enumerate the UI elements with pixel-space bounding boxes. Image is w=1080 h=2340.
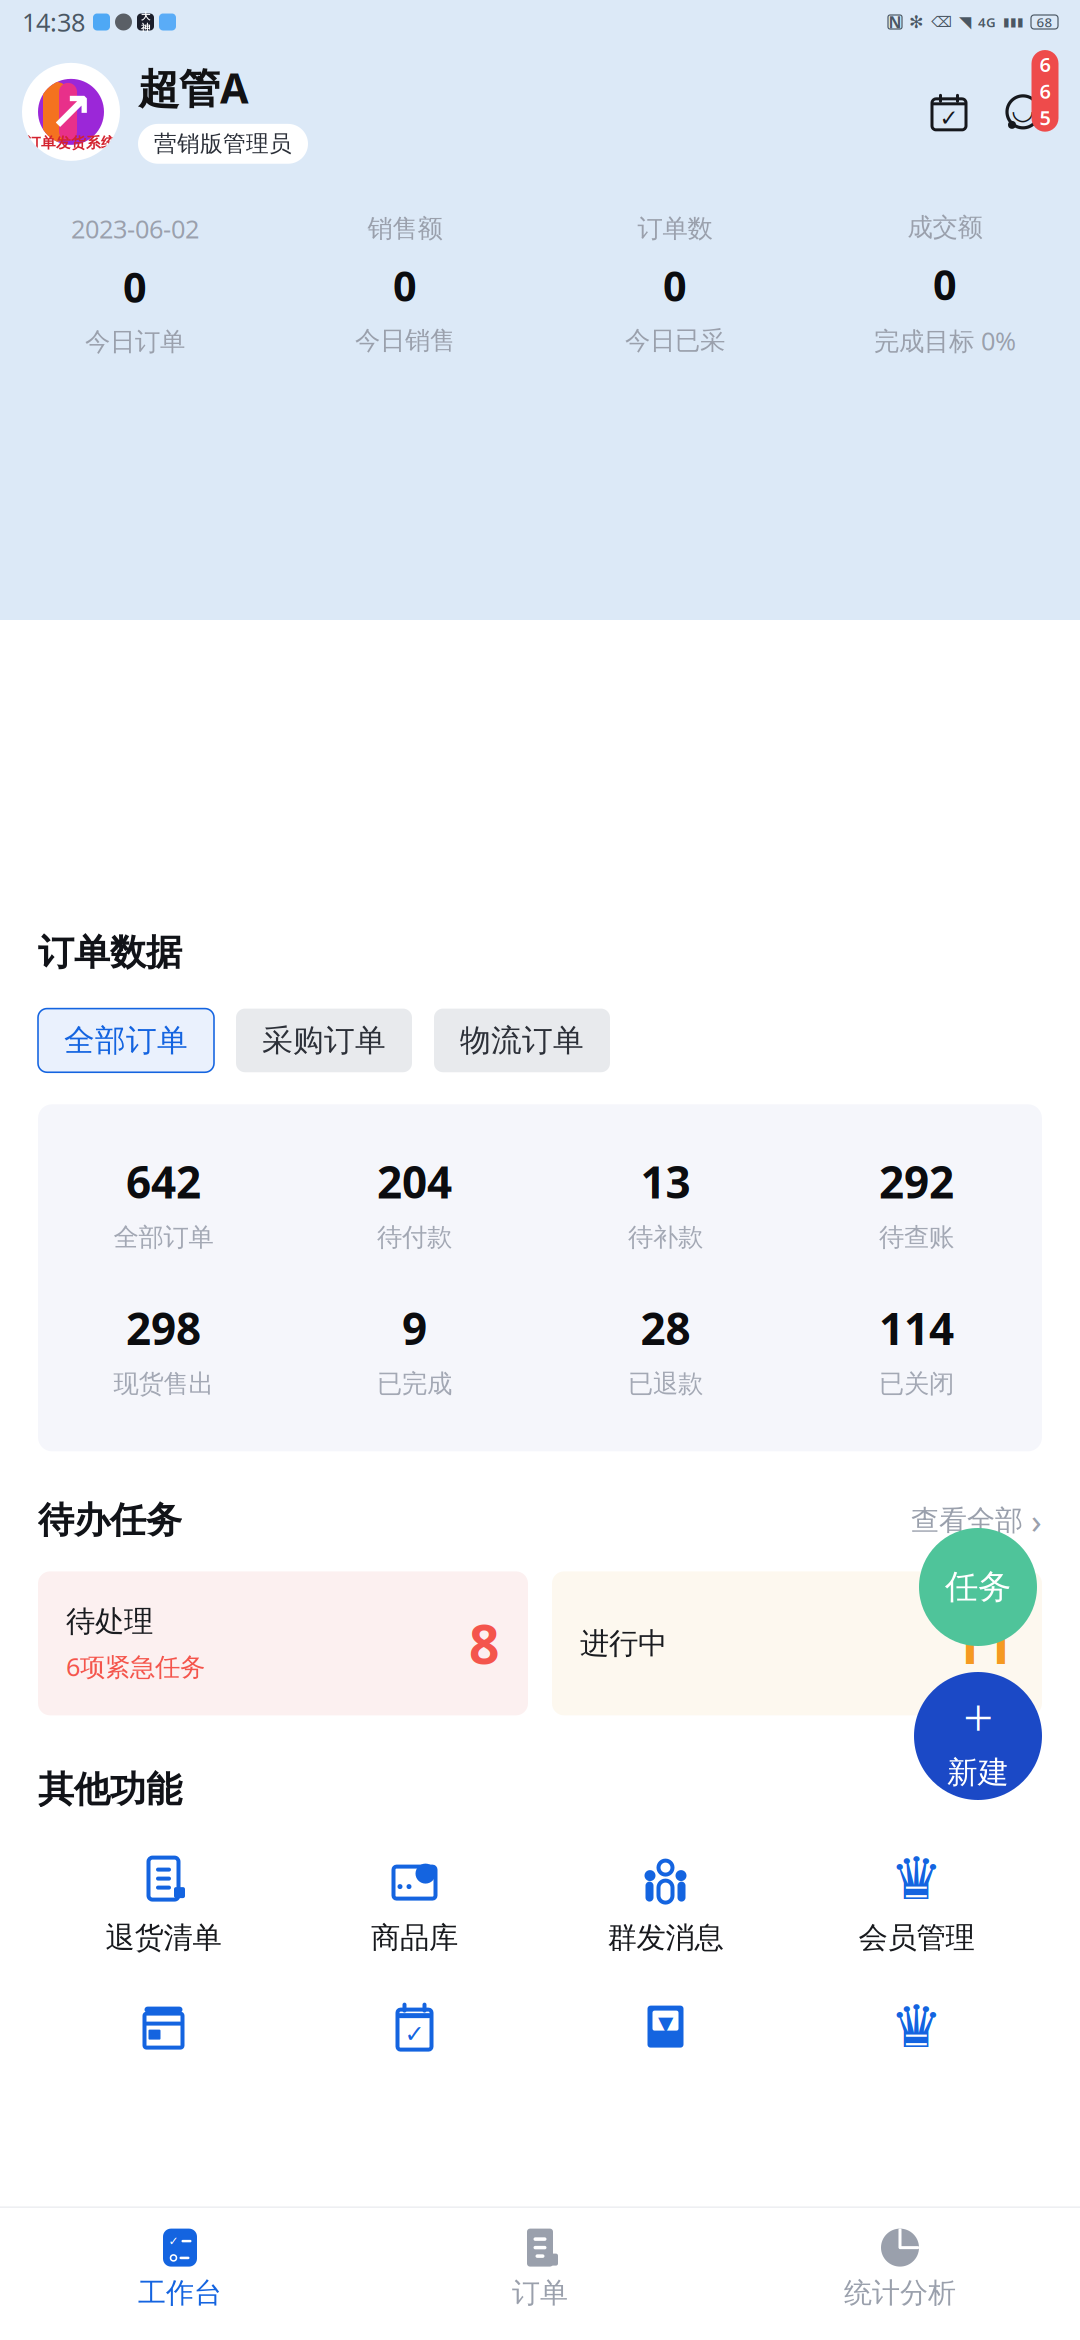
staticText: 114 bbox=[879, 1299, 954, 1357]
staticText: 现货售出 bbox=[113, 1368, 213, 1399]
staticText: 查看全部 bbox=[911, 1503, 1023, 1538]
staticText: 0 bbox=[933, 257, 957, 312]
staticText: 全部订单 bbox=[64, 1022, 188, 1059]
button[interactable]: ♛ bbox=[791, 1852, 1042, 1956]
staticText: 订单数据 bbox=[38, 930, 182, 975]
staticText: ⌫ bbox=[931, 14, 952, 30]
staticText: 群发消息 bbox=[607, 1920, 723, 1956]
staticText: 9 bbox=[402, 1299, 427, 1357]
staticText: 待处理 bbox=[66, 1603, 153, 1639]
staticText: › bbox=[1031, 1497, 1042, 1543]
button[interactable]: 28 bbox=[540, 1299, 791, 1399]
staticText: 会员管理 bbox=[858, 1920, 974, 1956]
staticText: 订单发货系统 bbox=[26, 134, 116, 152]
staticText: 204 bbox=[377, 1152, 452, 1211]
staticText: 全部订单 bbox=[113, 1222, 213, 1253]
staticText: 新建 bbox=[947, 1754, 1009, 1791]
staticText: 其他功能 bbox=[38, 1767, 182, 1812]
staticText: ✓ bbox=[404, 2020, 424, 2047]
staticText: 已完成 bbox=[377, 1368, 452, 1399]
button[interactable]: ▼ bbox=[540, 2000, 791, 2054]
staticText: ✓ bbox=[168, 2234, 178, 2248]
button[interactable]: + bbox=[914, 1672, 1042, 1800]
button[interactable]: ✓ bbox=[289, 2000, 540, 2054]
button[interactable]: 114 bbox=[791, 1299, 1042, 1399]
staticText: 商品库 bbox=[371, 1920, 458, 1956]
button[interactable]: 任务 bbox=[919, 1528, 1037, 1646]
button[interactable]: 204 bbox=[289, 1152, 540, 1253]
staticText: 物流订单 bbox=[460, 1022, 584, 1059]
staticText: 工作台 bbox=[138, 2276, 222, 2310]
staticText: 成交额 bbox=[907, 212, 982, 243]
staticText: 订单数 bbox=[637, 213, 712, 244]
staticText: 待付款 bbox=[377, 1222, 452, 1253]
button[interactable]: 9 bbox=[289, 1299, 540, 1399]
staticText: 完成目标 0% bbox=[874, 324, 1016, 357]
button[interactable]: 营销版管理员 bbox=[138, 124, 308, 164]
staticText: 今日已采 bbox=[625, 325, 725, 356]
button[interactable]: ✓ bbox=[0, 2218, 360, 2318]
staticText: 68 bbox=[1036, 13, 1052, 31]
staticText: 292 bbox=[879, 1152, 954, 1211]
staticText: 0 bbox=[123, 259, 147, 314]
button[interactable]: 查看全部 bbox=[911, 1497, 1042, 1543]
staticText: 待办任务 bbox=[38, 1498, 182, 1542]
button[interactable]: 群发消息 bbox=[540, 1852, 791, 1956]
staticText: 642 bbox=[126, 1152, 201, 1211]
staticText: 28 bbox=[640, 1299, 690, 1357]
staticText: 订单 bbox=[512, 2276, 568, 2310]
staticText: 任务 bbox=[945, 1566, 1011, 1607]
staticText: 采购订单 bbox=[262, 1022, 386, 1059]
staticText: 超管A bbox=[138, 60, 249, 115]
staticText: ▮▮▮ bbox=[1003, 15, 1024, 29]
staticText: 待查账 bbox=[879, 1222, 954, 1253]
staticText: 6项紧急任务 bbox=[66, 1650, 205, 1683]
button[interactable]: 298 bbox=[38, 1299, 289, 1399]
staticText: N bbox=[888, 11, 901, 33]
staticText: 大神 bbox=[141, 10, 150, 33]
staticText: ↗ bbox=[48, 82, 93, 142]
button[interactable]: 292 bbox=[791, 1152, 1042, 1253]
staticText: 待补款 bbox=[628, 1222, 703, 1253]
staticText: 0 bbox=[393, 258, 417, 313]
staticText: ✻ bbox=[909, 12, 924, 32]
staticText: 11 bbox=[952, 1608, 1014, 1679]
staticText: ◡ bbox=[1012, 95, 1033, 125]
staticText: 8 bbox=[469, 1608, 500, 1679]
button[interactable]: 全部订单 bbox=[38, 1009, 214, 1072]
staticText: 今日销售 bbox=[355, 325, 455, 356]
button[interactable]: 待处理 bbox=[38, 1571, 528, 1715]
button[interactable]: 统计分析 bbox=[720, 2218, 1080, 2318]
button[interactable]: 13 bbox=[540, 1152, 791, 1253]
button[interactable]: 订单 bbox=[360, 2218, 720, 2318]
staticText: 14:38 bbox=[22, 5, 85, 39]
button[interactable]: 物流订单 bbox=[434, 1009, 610, 1072]
staticText: 298 bbox=[126, 1299, 201, 1357]
staticText: 退货清单 bbox=[105, 1920, 221, 1956]
staticText: 13 bbox=[640, 1152, 690, 1211]
staticText: ✓ bbox=[939, 105, 958, 131]
button[interactable]: 消息 bbox=[988, 77, 1058, 147]
staticText: 营销版管理员 bbox=[154, 130, 292, 158]
button[interactable]: 642 bbox=[38, 1152, 289, 1253]
button[interactable]: 日程 bbox=[926, 89, 972, 135]
staticText: 0 bbox=[663, 258, 687, 313]
staticText: 已退款 bbox=[628, 1368, 703, 1399]
staticText: + bbox=[963, 1681, 993, 1752]
staticText: ♛ bbox=[890, 1993, 943, 2060]
staticText: 4G bbox=[978, 13, 996, 31]
staticText: ◥ bbox=[959, 13, 971, 31]
button[interactable]: 商品库 bbox=[289, 1852, 540, 1956]
button[interactable]: ♛ bbox=[791, 2000, 1042, 2054]
staticText: 进行中 bbox=[580, 1625, 667, 1661]
staticText: ♛ bbox=[890, 1845, 943, 1912]
button[interactable]: 采购订单 bbox=[236, 1009, 412, 1072]
staticText: 2023-06-02 bbox=[71, 212, 199, 245]
staticText: 统计分析 bbox=[844, 2276, 956, 2310]
button[interactable]: 进行中 bbox=[552, 1571, 1042, 1715]
staticText: ▼ bbox=[658, 2012, 673, 2035]
staticText: 已关闭 bbox=[879, 1368, 954, 1399]
button[interactable]: 退货清单 bbox=[38, 1852, 289, 1956]
button[interactable] bbox=[38, 2000, 289, 2054]
staticText: 销售额 bbox=[367, 213, 442, 244]
